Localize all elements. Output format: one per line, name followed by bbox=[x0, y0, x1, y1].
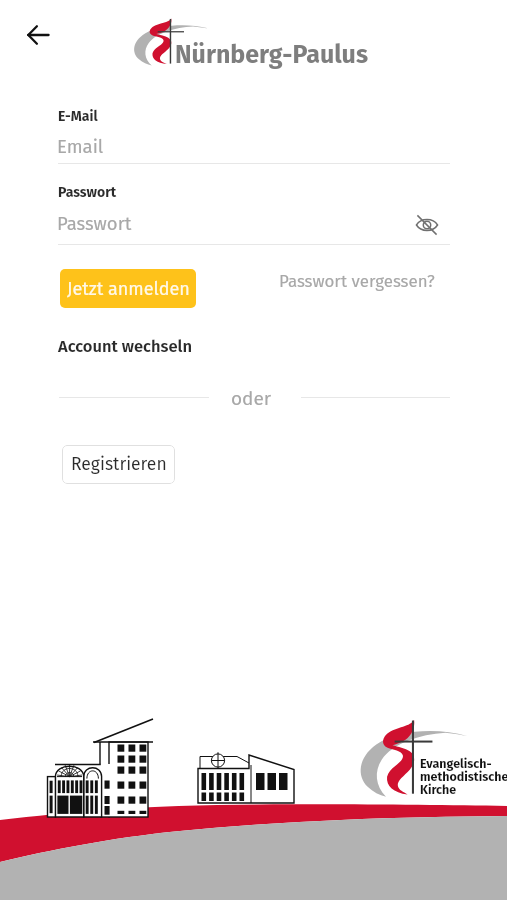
staticText: Passwort vergessen? bbox=[279, 271, 435, 291]
button[interactable]: Registrieren bbox=[62, 445, 175, 484]
staticText: Registrieren bbox=[71, 454, 167, 475]
staticText: Passwort bbox=[57, 213, 132, 235]
staticText: Evangelisch- methodistische Kirche bbox=[420, 756, 507, 797]
staticText: Passwort bbox=[58, 184, 117, 201]
button[interactable]: Back bbox=[14, 11, 62, 59]
button[interactable]: Show password bbox=[412, 210, 442, 240]
button[interactable]: Jetzt anmelden bbox=[60, 269, 196, 308]
button[interactable]: Account wechseln bbox=[58, 337, 192, 357]
staticText: E-Mail bbox=[58, 108, 98, 125]
staticText: Account wechseln bbox=[58, 337, 192, 357]
staticText: Nürnberg-Paulus bbox=[175, 40, 368, 70]
staticText: oder bbox=[231, 387, 272, 410]
staticText: Email bbox=[57, 136, 104, 158]
staticText: Jetzt anmelden bbox=[67, 278, 190, 300]
button[interactable]: Passwort vergessen? bbox=[273, 265, 441, 297]
